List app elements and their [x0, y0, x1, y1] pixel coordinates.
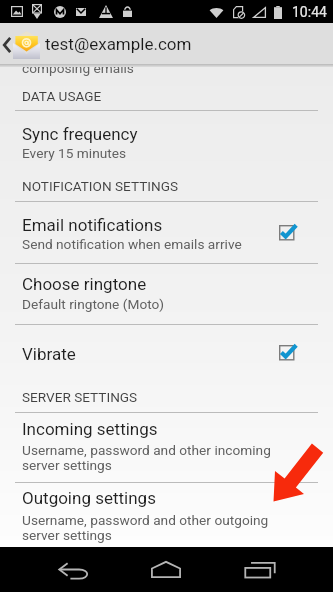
button[interactable]: Recent apps: [230, 547, 290, 592]
staticText: Email notifications: [22, 215, 163, 235]
staticText: Sync frequency: [22, 124, 138, 144]
button[interactable]: [0, 263, 333, 324]
staticText: Incoming settings: [22, 419, 158, 439]
staticText: Vibrate: [22, 344, 76, 364]
button[interactable]: [0, 110, 333, 201]
button[interactable]: [0, 412, 333, 482]
staticText: DATA USAGE: [22, 88, 102, 104]
button[interactable]: [0, 201, 333, 263]
button[interactable]: Back: [44, 547, 103, 592]
staticText: composing emails: [22, 67, 134, 76]
button[interactable]: Navigate up: [0, 23, 333, 67]
button[interactable]: Toggle setting: [275, 341, 299, 365]
staticText: test@example.com: [45, 34, 192, 54]
staticText: Choose ringtone: [22, 274, 147, 294]
button[interactable]: [0, 324, 333, 385]
staticText: 10:44: [292, 4, 327, 20]
staticText: Outgoing settings: [22, 488, 156, 508]
staticText: Default ringtone (Moto): [22, 296, 165, 312]
button[interactable]: [0, 482, 333, 546]
staticText: NOTIFICATION SETTINGS: [22, 178, 178, 194]
staticText: Every 15 minutes: [22, 145, 127, 161]
button[interactable]: Home: [136, 547, 196, 592]
staticText: Username, password and other incoming se…: [22, 442, 304, 473]
staticText: SERVER SETTINGS: [22, 389, 138, 405]
staticText: Send notification when emails arrive: [22, 236, 242, 252]
staticText: Username, password and other outgoing se…: [22, 512, 304, 543]
button[interactable]: Toggle setting: [275, 221, 299, 245]
